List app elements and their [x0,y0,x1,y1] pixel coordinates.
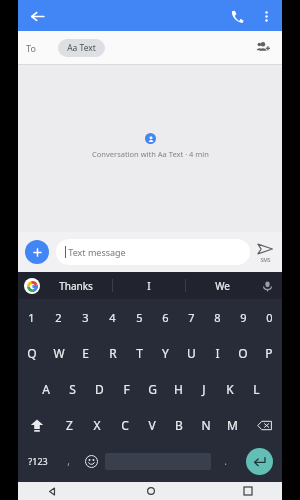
staticText: We [215,279,230,293]
button[interactable]: Add people [252,37,274,59]
button[interactable]: Text message [56,239,250,265]
button[interactable]: F [113,371,139,407]
staticText: N [201,417,211,433]
staticText: 4 [109,310,116,325]
button[interactable]: L [243,371,269,407]
staticText: P [265,345,273,361]
button[interactable]: Thanks [40,272,112,299]
button[interactable]: ?123 [18,443,57,479]
staticText: X [93,417,101,433]
button[interactable]: 9 [230,299,256,335]
staticText: R [109,345,117,361]
staticText: SMS [260,257,271,264]
staticText: Z [66,417,73,433]
button[interactable]: Google [24,278,40,294]
staticText: O [238,345,248,361]
staticText: 9 [240,310,247,325]
staticText: U [187,345,196,361]
button[interactable]: Backspace [246,407,282,443]
button[interactable]: U [178,335,204,371]
button[interactable]: 2 [45,299,72,335]
staticText: B [175,417,183,433]
button[interactable]: P [256,335,282,371]
button[interactable]: H [165,371,191,407]
button[interactable]: S [59,371,86,407]
staticText: Aa Text [67,42,96,54]
button[interactable]: K [217,371,243,407]
staticText: Q [27,345,37,361]
button[interactable]: A [32,371,59,407]
staticText: S [69,381,76,397]
staticText: J [202,381,206,397]
staticText: Text message [68,246,126,258]
staticText: I [147,279,151,293]
staticText: L [253,381,260,397]
button[interactable]: Recents [241,486,254,496]
button[interactable]: D [86,371,113,407]
button[interactable]: Call [225,4,249,28]
staticText: , [67,454,70,468]
staticText: 1 [28,310,35,325]
button[interactable]: Aa Text [58,39,105,57]
button[interactable]: J [191,371,217,407]
staticText: V [148,417,156,433]
staticText: Y [162,345,169,361]
button[interactable]: 6 [152,299,178,335]
button[interactable]: O [230,335,256,371]
button[interactable]: T [126,335,152,371]
staticText: Thanks [59,279,93,293]
button[interactable]: More options [255,5,277,27]
staticText: ?123 [28,455,48,467]
button[interactable]: Comma [57,443,79,479]
button[interactable]: 0 [256,299,282,335]
button[interactable]: 1 [18,299,45,335]
button[interactable]: Send SMS [255,241,275,264]
button[interactable]: V [138,407,165,443]
button[interactable]: Y [152,335,178,371]
button[interactable]: Voice input [258,277,276,295]
staticText: 0 [266,310,273,325]
button[interactable]: B [165,407,192,443]
button[interactable]: G [139,371,165,407]
button[interactable]: Back [24,3,50,29]
button[interactable]: W [45,335,72,371]
staticText: M [227,417,238,433]
staticText: H [174,381,183,397]
button[interactable]: I [204,335,230,371]
button[interactable]: 4 [99,299,126,335]
button[interactable]: 3 [72,299,99,335]
button[interactable]: Home [144,486,157,496]
button[interactable]: Period [213,443,237,479]
staticText: G [148,381,157,397]
button[interactable]: M [219,407,246,443]
button[interactable]: C [111,407,138,443]
staticText: . [224,454,227,468]
staticText: Conversation with Aa Text · 4 min [92,149,209,159]
button[interactable]: Back [46,486,59,496]
button[interactable]: Enter [246,448,273,475]
button[interactable]: Add attachment [25,240,49,264]
staticText: E [82,345,89,361]
staticText: K [226,381,234,397]
staticText: T [136,345,143,361]
staticText: To [26,42,36,54]
button[interactable]: 5 [126,299,152,335]
button[interactable]: 8 [204,299,230,335]
staticText: F [123,381,130,397]
button[interactable]: Q [18,335,45,371]
staticText: W [53,345,65,361]
staticText: 3 [82,310,89,325]
button[interactable]: Shift [18,407,55,443]
button[interactable]: Z [55,407,83,443]
button[interactable]: X [83,407,111,443]
button[interactable]: I [113,272,185,299]
button[interactable]: We [186,272,258,299]
button[interactable]: 7 [178,299,204,335]
staticText: D [95,381,104,397]
button[interactable]: N [192,407,219,443]
button[interactable]: R [99,335,126,371]
button[interactable]: E [72,335,99,371]
button[interactable]: Emoji [79,443,103,479]
staticText: I [215,345,220,361]
